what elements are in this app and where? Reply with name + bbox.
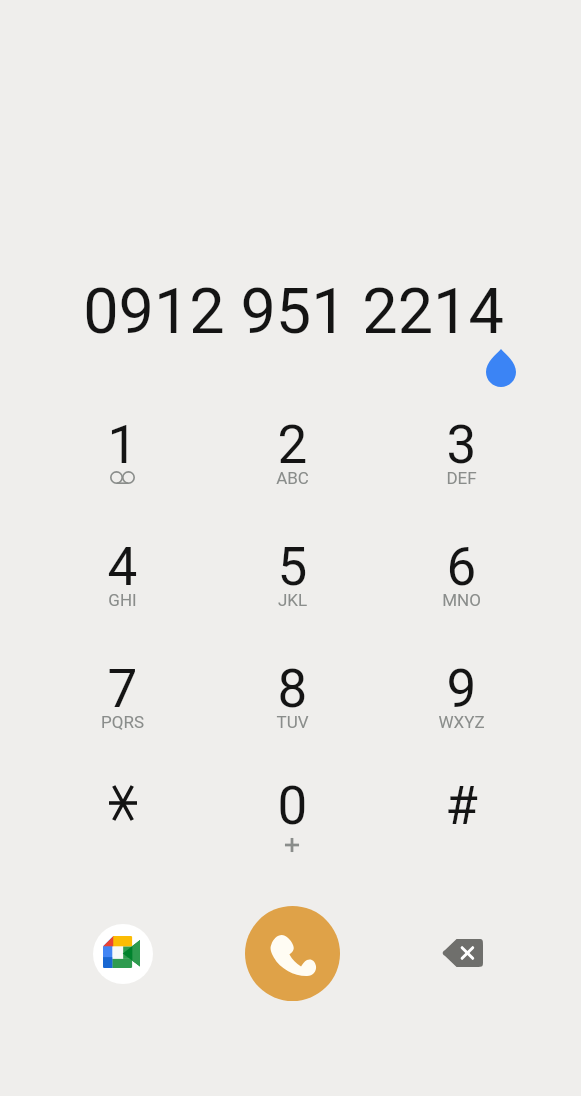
staticText: 6 bbox=[377, 536, 546, 598]
staticText: 2 bbox=[208, 414, 377, 476]
button[interactable]: 9 bbox=[377, 643, 546, 761]
button[interactable]: 0 bbox=[208, 760, 377, 878]
button[interactable]: Call bbox=[245, 906, 340, 1001]
staticText: PQRS bbox=[38, 712, 207, 732]
staticText: 4 bbox=[38, 536, 207, 598]
button[interactable]: star bbox=[38, 760, 207, 878]
button[interactable]: 3 bbox=[377, 399, 546, 517]
staticText: GHI bbox=[38, 590, 207, 610]
staticText: DEF bbox=[377, 468, 546, 488]
staticText: 3 bbox=[377, 414, 546, 476]
button[interactable]: 0912 951 2214 bbox=[3, 275, 581, 335]
staticText: 1 bbox=[38, 414, 207, 476]
button[interactable]: SIM card indicator bbox=[486, 349, 516, 387]
staticText: 9 bbox=[377, 658, 546, 720]
button[interactable]: 1 bbox=[38, 399, 207, 517]
staticText: 5 bbox=[208, 536, 377, 598]
staticText: 0 bbox=[208, 775, 377, 837]
staticText: # bbox=[377, 775, 546, 837]
button[interactable]: # bbox=[377, 760, 546, 878]
button[interactable]: 2 bbox=[208, 399, 377, 517]
staticText: JKL bbox=[208, 590, 377, 610]
button[interactable]: 8 bbox=[208, 643, 377, 761]
staticText: ABC bbox=[208, 468, 377, 488]
staticText: 7 bbox=[38, 658, 207, 720]
button[interactable]: Video call bbox=[93, 924, 153, 984]
staticText: 8 bbox=[208, 658, 377, 720]
button[interactable]: Backspace bbox=[424, 916, 501, 989]
button[interactable]: 5 bbox=[208, 521, 377, 639]
staticText: WXYZ bbox=[377, 712, 546, 732]
button[interactable]: 4 bbox=[38, 521, 207, 639]
button[interactable]: 7 bbox=[38, 643, 207, 761]
staticText: 0912 951 2214 bbox=[3, 275, 581, 335]
button[interactable]: 6 bbox=[377, 521, 546, 639]
staticText: MNO bbox=[377, 590, 546, 610]
staticText: TUV bbox=[208, 712, 377, 732]
